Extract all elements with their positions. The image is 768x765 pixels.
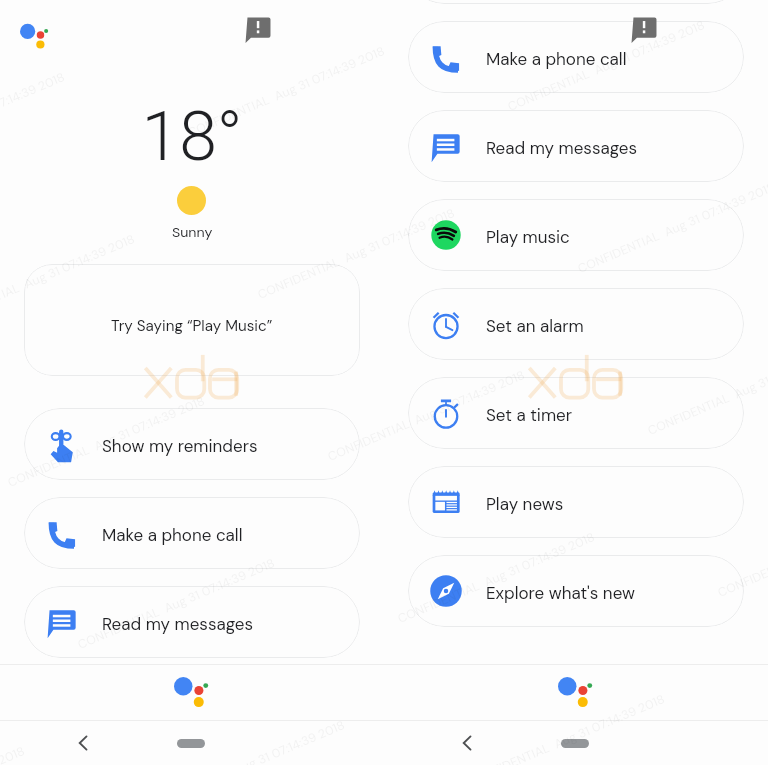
button[interactable]: Make a phone call	[408, 21, 744, 93]
button[interactable]: Explore what's new	[408, 555, 744, 627]
staticText: CONFIDENTIAL Aug 31 07:14:39 2018	[395, 529, 598, 627]
button[interactable]: Home	[177, 739, 205, 748]
button[interactable]: Send feedback	[631, 17, 657, 43]
staticText: CONFIDENTIAL Aug 31 07:14:39 2018	[505, 17, 708, 115]
staticText: Make a phone call	[102, 524, 243, 546]
staticText: Show my reminders	[102, 435, 258, 457]
staticText: 18°	[141, 97, 243, 169]
staticText: Set a timer	[486, 404, 573, 426]
staticText: CONFIDENTIAL Aug 31 07:14:39 2018	[325, 367, 528, 465]
button[interactable]: Back	[72, 732, 94, 754]
staticText: Set an alarm	[486, 315, 584, 337]
staticText: Make a phone call	[486, 48, 627, 70]
staticText: Try Saying “Play Music”	[111, 316, 273, 336]
staticText: CONFIDENTIAL Aug 31 07:14:39 2018	[465, 691, 668, 765]
button[interactable]: Read my messages	[24, 586, 360, 658]
button[interactable]: Home	[561, 739, 589, 748]
staticText: CONFIDENTIAL Aug 31 07:14:39 2018	[185, 43, 388, 141]
button[interactable]: Read my messages	[408, 110, 744, 182]
staticText: CONFIDENTIAL Aug 31 07:14:39 2018	[255, 205, 458, 303]
button[interactable]: Make a phone call	[24, 497, 360, 569]
button[interactable]: Google Assistant	[174, 676, 208, 710]
staticText: Read my messages	[486, 137, 637, 159]
staticText: CONFIDENTIAL Aug 31 07:14:39 2018	[5, 393, 208, 491]
button[interactable]: Google Assistant	[20, 23, 48, 51]
button[interactable]: Set a timer	[408, 377, 744, 449]
staticText: Play news	[486, 493, 564, 515]
button[interactable]: Show my reminders	[24, 408, 360, 480]
staticText: Sunny	[172, 223, 213, 241]
staticText: Play music	[486, 226, 570, 248]
button[interactable]: Back	[456, 732, 478, 754]
button[interactable]: Try Saying “Play Music”	[24, 264, 360, 376]
staticText: CONFIDENTIAL Aug 31 07:14:39 2018	[575, 179, 768, 277]
button[interactable]: Play news	[408, 466, 744, 538]
staticText: CONFIDENTIAL Aug 31 07:14:39 2018	[75, 555, 278, 653]
button[interactable]: Set an alarm	[408, 288, 744, 360]
staticText: Read my messages	[102, 613, 253, 635]
staticText: CONFIDENTIAL Aug 31 07:14:39 2018	[145, 717, 348, 765]
staticText: Explore what's new	[486, 582, 635, 604]
button[interactable]: Send feedback	[245, 17, 271, 43]
button[interactable]: Google Assistant	[558, 676, 592, 710]
staticText: CONFIDENTIAL Aug 31 07:14:39 2018	[0, 231, 138, 329]
button[interactable]: Set a reminder	[408, 0, 744, 4]
button[interactable]: Play music	[408, 199, 744, 271]
